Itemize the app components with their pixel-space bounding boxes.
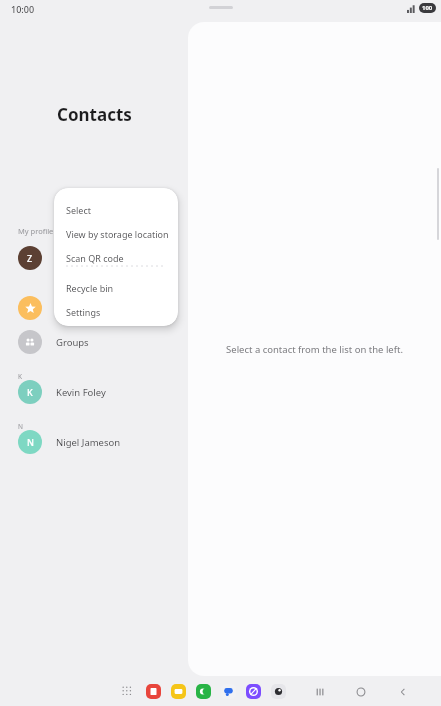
button[interactable]: Messages (221, 684, 236, 699)
button[interactable]: K (0, 375, 188, 409)
staticText: Select a contact from the list on the le… (188, 343, 441, 356)
staticText: Settings (66, 306, 101, 318)
staticText: N (27, 436, 34, 448)
button[interactable] (0, 291, 188, 325)
button[interactable]: Select (54, 198, 178, 222)
button[interactable]: Recycle bin (54, 276, 178, 300)
button[interactable]: Groups (0, 325, 188, 359)
button[interactable]: Home (354, 685, 368, 699)
button[interactable]: Recent apps (313, 685, 327, 699)
staticText: Kevin Foley (56, 386, 106, 399)
staticText: Nigel Jameson (56, 436, 121, 449)
staticText: Recycle bin (66, 282, 114, 294)
button[interactable]: Notes (146, 684, 161, 699)
button[interactable]: N (0, 425, 188, 459)
button[interactable]: Files (171, 684, 186, 699)
staticText: My profile (18, 226, 54, 236)
button[interactable]: Internet (246, 684, 261, 699)
staticText: 10:00 (11, 3, 35, 15)
button[interactable]: Camera (271, 684, 286, 699)
button[interactable]: App drawer (121, 685, 134, 698)
button[interactable]: Z (0, 241, 188, 275)
staticText: View by storage location (66, 228, 169, 240)
staticText: Groups (56, 336, 89, 349)
button[interactable]: Phone (196, 684, 211, 699)
staticText: 100 (422, 4, 433, 12)
staticText: Z (27, 252, 33, 264)
button[interactable]: Back (396, 685, 410, 699)
staticText: K (27, 386, 33, 398)
staticText: Contacts (57, 103, 132, 126)
staticText: Scan QR code (66, 252, 124, 264)
staticText: N (18, 422, 23, 431)
button[interactable]: Settings (54, 300, 178, 324)
staticText: K (18, 372, 23, 381)
button[interactable]: Scan QR code (54, 246, 178, 270)
button[interactable]: View by storage location (54, 222, 178, 246)
staticText: Select (66, 204, 91, 216)
